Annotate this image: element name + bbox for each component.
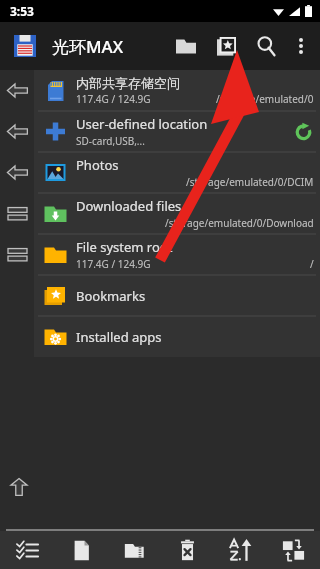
button[interactable]: Search [246, 26, 286, 66]
button[interactable]: Photos [34, 152, 320, 193]
staticText: Downloaded files [76, 197, 182, 215]
button[interactable]: Bookmarks [206, 26, 246, 66]
staticText: Installed apps [76, 328, 162, 346]
staticText: 3:53 [10, 3, 34, 19]
staticText: User-defined location [76, 115, 208, 133]
staticText: /storage/emulated/0/DCIM [186, 175, 314, 189]
staticText: /storage/emulated/0 [216, 92, 314, 106]
button[interactable]: Open folder [166, 26, 206, 66]
button[interactable]: 内部共享存储空间 [34, 70, 320, 111]
button[interactable] [12, 33, 38, 59]
staticText: 117.4G / 124.9G [76, 257, 151, 271]
staticText: 117.4G / 124.9G [76, 92, 151, 106]
button[interactable]: User-defined location [34, 111, 320, 152]
button[interactable]: Delete [161, 531, 214, 569]
button[interactable]: Refresh [286, 111, 320, 152]
staticText: / [310, 257, 314, 271]
button[interactable]: Transfer [267, 531, 320, 569]
button[interactable]: Installed apps [34, 316, 320, 357]
staticText: Photos [76, 156, 119, 174]
button[interactable]: New file [54, 531, 108, 569]
staticText: /storage/emulated/0/Download [165, 216, 314, 230]
button[interactable]: Archive [108, 531, 161, 569]
staticText: 光环MAX [52, 35, 124, 58]
button[interactable]: Up [8, 476, 30, 498]
staticText: File system root [76, 238, 173, 256]
staticText: Bookmarks [76, 287, 146, 305]
staticText: 内部共享存储空间 [76, 75, 180, 91]
button[interactable]: Bookmarks [34, 275, 320, 316]
button[interactable]: Downloaded files [34, 193, 320, 234]
button[interactable]: File system root [34, 234, 320, 275]
button[interactable]: Sort [214, 531, 267, 569]
staticText: SD-card,USB,... [76, 134, 145, 148]
button[interactable]: More options [286, 26, 316, 66]
button[interactable]: Select [0, 531, 54, 569]
